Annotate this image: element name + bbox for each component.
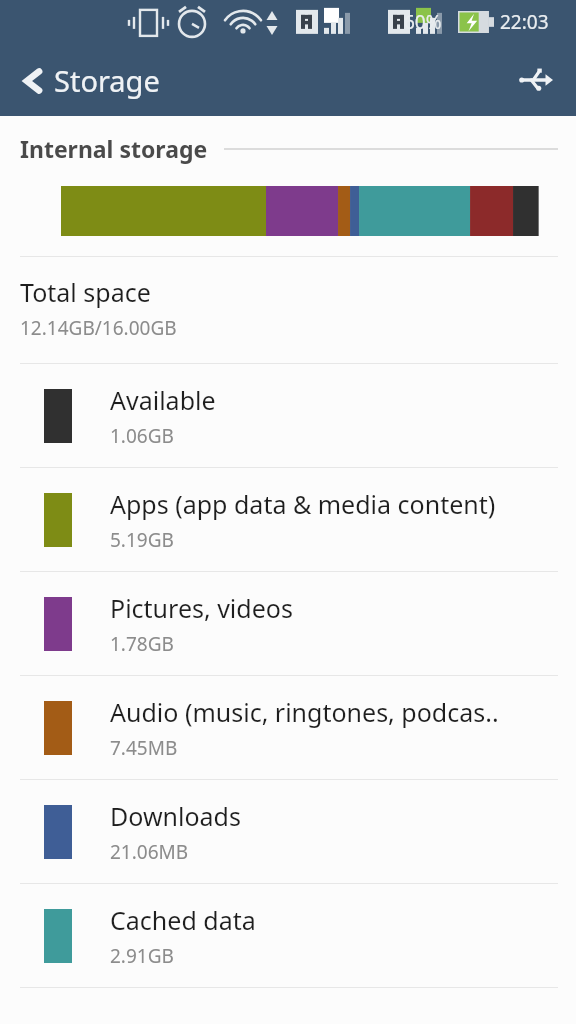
button[interactable]: Available: [0, 364, 576, 467]
button[interactable]: Audio (music, ringtones, podcas..: [0, 676, 576, 779]
staticText: 2.91GB: [110, 943, 174, 969]
button[interactable]: Back: [14, 55, 168, 106]
staticText: 1.78GB: [110, 631, 174, 657]
staticText: 7.45MB: [110, 735, 178, 761]
staticText: 21.06MB: [110, 839, 189, 865]
staticText: 60%: [404, 9, 442, 35]
button[interactable]: Total space: [0, 257, 576, 363]
button[interactable]: USB connection: [510, 54, 562, 106]
staticText: Downloads: [110, 799, 241, 833]
staticText: Pictures, videos: [110, 591, 293, 625]
button[interactable]: Cached data: [0, 884, 576, 987]
staticText: Total space: [20, 275, 151, 309]
staticText: Storage: [54, 61, 160, 100]
other: Back: [22, 66, 44, 96]
staticText: Audio (music, ringtones, podcas..: [110, 695, 499, 729]
staticText: 5.19GB: [110, 527, 174, 553]
staticText: Apps (app data & media content): [110, 487, 496, 521]
staticText: 12.14GB/16.00GB: [20, 315, 177, 341]
staticText: 22:03: [500, 9, 549, 35]
button[interactable]: Apps (app data & media content): [0, 468, 576, 571]
staticText: Cached data: [110, 903, 256, 937]
staticText: 1.06GB: [110, 423, 174, 449]
button[interactable]: Downloads: [0, 780, 576, 883]
staticText: Available: [110, 383, 216, 417]
staticText: Internal storage: [20, 133, 208, 164]
button[interactable]: Pictures, videos: [0, 572, 576, 675]
